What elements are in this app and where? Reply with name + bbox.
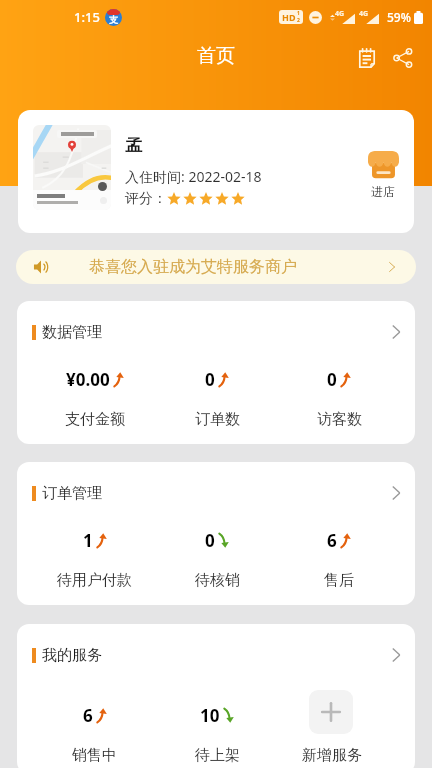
staticText: 售后 — [324, 571, 354, 590]
button[interactable]: 进店 — [352, 151, 414, 199]
staticText: 评分： — [125, 190, 167, 208]
staticText: 支 — [109, 14, 118, 25]
button[interactable]: 0 — [278, 368, 400, 429]
staticText: 数据管理 — [42, 323, 102, 342]
button[interactable]: Add service — [309, 690, 353, 734]
button[interactable]: 0 — [156, 368, 278, 429]
staticText: 待上架 — [195, 746, 240, 765]
staticText: 支付金额 — [65, 410, 125, 429]
button[interactable]: 数据管理 — [17, 301, 415, 363]
button[interactable]: 10 — [156, 686, 278, 765]
button[interactable]: 6 — [33, 686, 156, 765]
button[interactable]: ¥0.00 — [33, 368, 156, 429]
staticText: 0 — [205, 368, 215, 391]
staticText: 入住时间: 2022-02-18 — [125, 167, 262, 186]
staticText: 59% — [387, 9, 411, 25]
staticText: 恭喜您入驻成为艾特服务商户 — [89, 257, 297, 277]
button[interactable]: 恭喜您入驻成为艾特服务商户 — [16, 250, 416, 284]
staticText: 1 — [83, 529, 93, 552]
button[interactable]: 1 — [33, 529, 156, 590]
staticText: 待核销 — [195, 571, 240, 590]
button[interactable]: Add service — [278, 686, 400, 765]
staticText: ¥0.00 — [66, 368, 110, 391]
staticText: 1 — [297, 10, 300, 17]
staticText: 订单管理 — [42, 484, 102, 503]
staticText: 4G — [335, 9, 345, 19]
staticText: HD — [282, 11, 296, 23]
staticText: 10 — [200, 704, 220, 727]
button[interactable]: Notes — [349, 40, 385, 76]
staticText: 访客数 — [317, 410, 362, 429]
staticText: 我的服务 — [42, 646, 102, 665]
staticText: 1:15 — [74, 8, 100, 26]
staticText: 孟 — [125, 135, 142, 156]
staticText: 0 — [327, 368, 337, 391]
staticText: 进店 — [371, 184, 395, 199]
staticText: 0 — [205, 529, 215, 552]
staticText: 6 — [327, 529, 337, 552]
button[interactable]: Share — [385, 40, 421, 76]
staticText: 订单数 — [195, 410, 240, 429]
staticText: 新增服务 — [302, 746, 362, 765]
staticText: 6 — [83, 704, 93, 727]
staticText: 2 — [297, 17, 300, 24]
button[interactable]: 我的服务 — [17, 624, 415, 686]
staticText: 4G — [359, 9, 369, 19]
staticText: 销售中 — [72, 746, 117, 765]
button[interactable]: 孟 — [18, 110, 414, 233]
staticText: 首页 — [197, 44, 235, 68]
staticText: 待用户付款 — [57, 571, 132, 590]
button[interactable]: 0 — [156, 529, 278, 590]
button[interactable]: 订单管理 — [17, 462, 415, 524]
button[interactable]: 6 — [278, 529, 400, 590]
